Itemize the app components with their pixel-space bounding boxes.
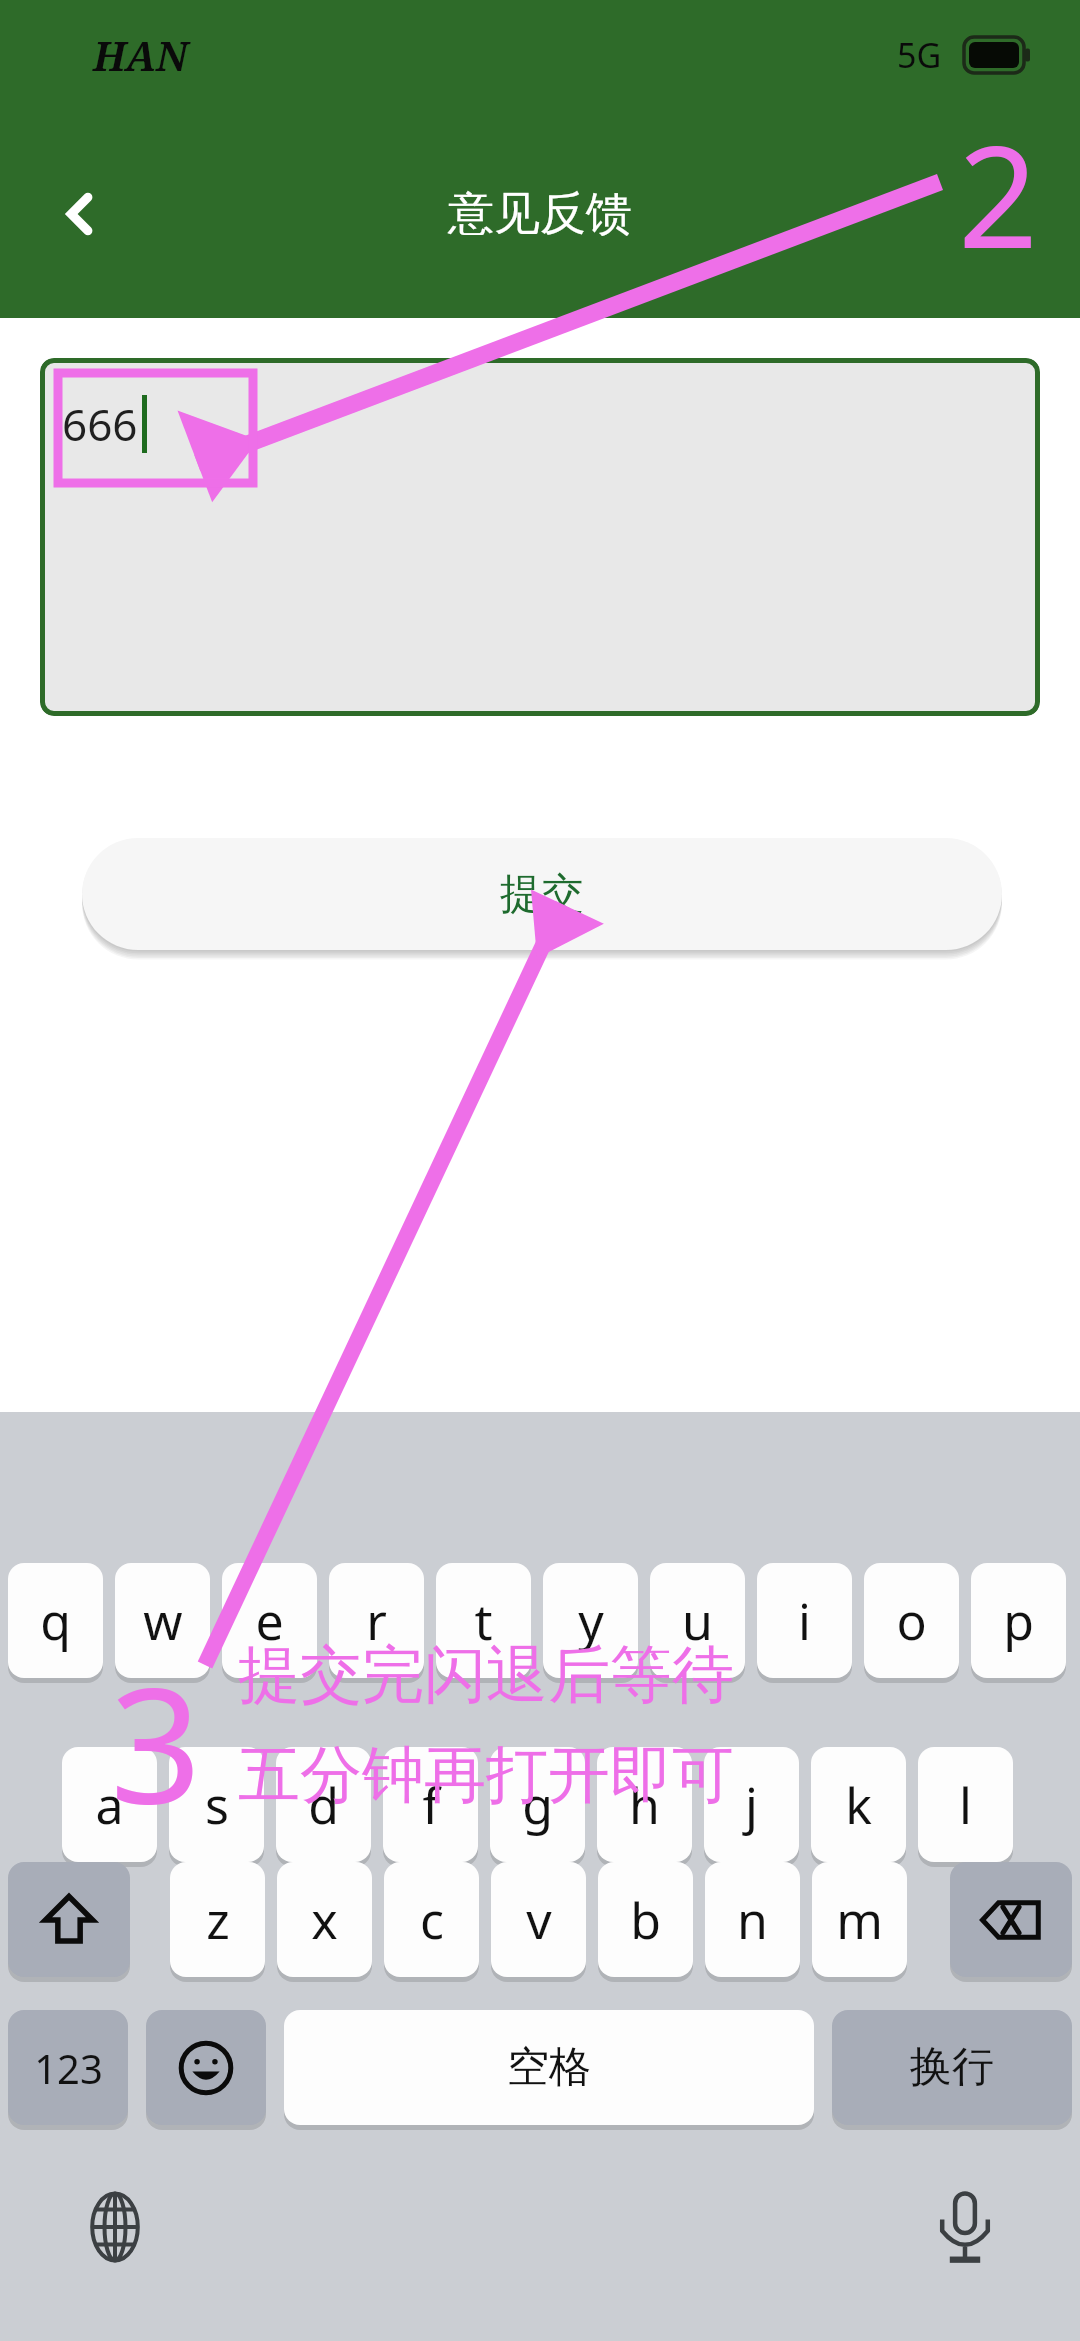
button[interactable]: s bbox=[169, 1747, 264, 1862]
button[interactable]: t bbox=[436, 1563, 531, 1678]
staticText: d bbox=[308, 1771, 339, 1839]
button[interactable]: Backspace bbox=[950, 1862, 1072, 1977]
button[interactable]: Emoji bbox=[146, 2010, 266, 2125]
staticText: f bbox=[422, 1771, 440, 1839]
staticText: a bbox=[95, 1771, 124, 1839]
staticText: 5G bbox=[897, 32, 942, 78]
button[interactable]: Voice input bbox=[920, 2182, 1010, 2272]
staticText: m bbox=[836, 1886, 883, 1954]
button[interactable]: d bbox=[276, 1747, 371, 1862]
button[interactable]: q bbox=[8, 1563, 103, 1678]
button[interactable]: u bbox=[650, 1563, 745, 1678]
button[interactable]: r bbox=[329, 1563, 424, 1678]
staticText: c bbox=[420, 1886, 444, 1954]
staticText: HAN bbox=[93, 28, 188, 82]
button[interactable]: g bbox=[490, 1747, 585, 1862]
staticText: 意见反馈 bbox=[448, 185, 632, 243]
button[interactable]: k bbox=[811, 1747, 906, 1862]
staticText: u bbox=[682, 1587, 713, 1655]
staticText: 2 bbox=[958, 98, 1039, 289]
button[interactable]: y bbox=[543, 1563, 638, 1678]
staticText: t bbox=[474, 1587, 493, 1655]
button[interactable]: h bbox=[597, 1747, 692, 1862]
staticText: v bbox=[526, 1886, 552, 1954]
staticText: y bbox=[578, 1587, 604, 1655]
button[interactable]: a bbox=[62, 1747, 157, 1862]
button[interactable]: v bbox=[491, 1862, 586, 1977]
button[interactable]: 换行 bbox=[832, 2010, 1072, 2125]
button[interactable]: x bbox=[277, 1862, 372, 1977]
button[interactable]: p bbox=[971, 1563, 1066, 1678]
button[interactable]: 123 bbox=[8, 2010, 128, 2125]
button[interactable]: l bbox=[918, 1747, 1013, 1862]
staticText: x bbox=[311, 1886, 338, 1954]
staticText: e bbox=[255, 1587, 284, 1655]
staticText: n bbox=[737, 1886, 768, 1954]
staticText: b bbox=[630, 1886, 661, 1954]
button[interactable]: 666 bbox=[40, 358, 1040, 716]
button[interactable]: w bbox=[115, 1563, 210, 1678]
staticText: 换行 bbox=[910, 2041, 994, 2094]
staticText: z bbox=[206, 1886, 230, 1954]
button[interactable]: Shift bbox=[8, 1862, 130, 1977]
button[interactable]: b bbox=[598, 1862, 693, 1977]
staticText: s bbox=[205, 1771, 229, 1839]
staticText: 提交完闪退后等待 五分钟再打开即可 bbox=[238, 1636, 734, 1814]
staticText: h bbox=[629, 1771, 660, 1839]
button[interactable]: Change language bbox=[70, 2182, 160, 2272]
staticText: 123 bbox=[34, 2041, 103, 2095]
button[interactable]: Back bbox=[30, 164, 130, 264]
staticText: r bbox=[366, 1587, 387, 1655]
staticText: o bbox=[896, 1587, 927, 1655]
button[interactable]: m bbox=[812, 1862, 907, 1977]
button[interactable]: i bbox=[757, 1563, 852, 1678]
staticText: 666 bbox=[62, 394, 138, 454]
button[interactable]: e bbox=[222, 1563, 317, 1678]
button[interactable]: f bbox=[383, 1747, 478, 1862]
button[interactable]: o bbox=[864, 1563, 959, 1678]
staticText: p bbox=[1003, 1587, 1034, 1655]
staticText: i bbox=[798, 1587, 811, 1655]
button[interactable]: n bbox=[705, 1862, 800, 1977]
staticText: 空格 bbox=[507, 2041, 591, 2094]
staticText: q bbox=[40, 1587, 71, 1655]
button[interactable]: c bbox=[384, 1862, 479, 1977]
staticText: 3 bbox=[110, 1632, 202, 1850]
button[interactable]: 空格 bbox=[284, 2010, 814, 2125]
staticText: k bbox=[845, 1771, 872, 1839]
staticText: 提交 bbox=[500, 868, 584, 921]
staticText: l bbox=[959, 1771, 972, 1839]
button[interactable]: j bbox=[704, 1747, 799, 1862]
button[interactable]: 提交 bbox=[82, 838, 1002, 950]
staticText: g bbox=[522, 1771, 553, 1839]
staticText: w bbox=[143, 1587, 183, 1655]
button[interactable]: z bbox=[170, 1862, 265, 1977]
staticText: j bbox=[745, 1771, 758, 1839]
